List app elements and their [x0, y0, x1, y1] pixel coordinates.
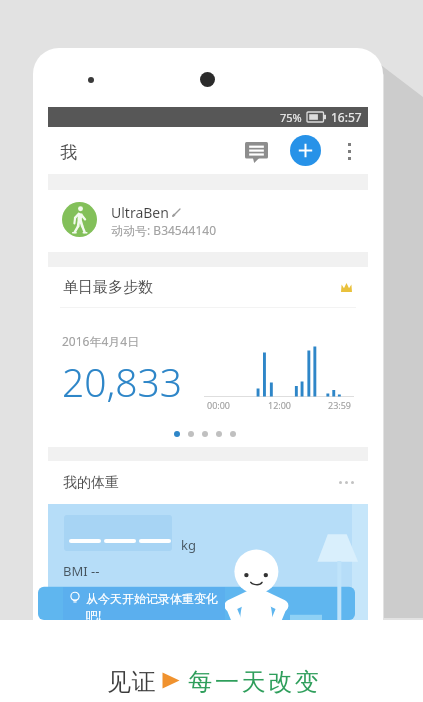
button[interactable]: 我的体重 [48, 461, 368, 504]
staticText: 单日最多步数 [63, 278, 153, 297]
button[interactable]: UltraBen [48, 190, 368, 252]
staticText: kg [181, 536, 196, 554]
button[interactable]: Add [290, 135, 321, 166]
button[interactable] [64, 515, 172, 551]
staticText: 每一天改变 [187, 667, 320, 697]
staticText: 12:00 [268, 399, 292, 411]
staticText: UltraBen [111, 203, 169, 222]
staticText: 2016年4月4日 [62, 333, 140, 349]
staticText: BMI -- [63, 562, 100, 580]
staticText: 75% [280, 110, 302, 125]
button[interactable]: 从今天开始记录体重变化吧! [63, 587, 225, 620]
button[interactable]: More options [335, 137, 363, 165]
button[interactable]: Messages [237, 137, 276, 168]
staticText: 动动号: B34544140 [111, 222, 217, 238]
staticText: 我 [60, 142, 77, 163]
staticText: 23:59 [328, 399, 352, 411]
staticText: 20,833 [62, 355, 183, 408]
staticText: 我的体重 [63, 474, 119, 492]
staticText: 00:00 [207, 399, 231, 411]
staticText: 16:57 [331, 109, 362, 125]
staticText: 见证 [107, 667, 157, 697]
button[interactable]: 单日最多步数 [48, 267, 368, 307]
staticText: 从今天开始记录体重变化吧! [86, 591, 222, 623]
